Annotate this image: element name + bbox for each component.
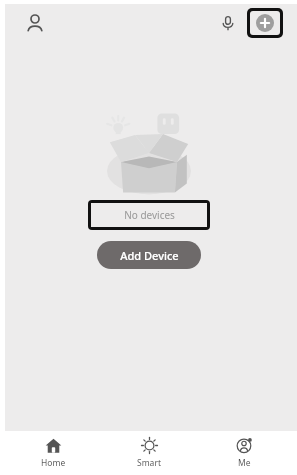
- button[interactable]: Home: [11, 431, 95, 475]
- staticText: Me: [238, 457, 251, 469]
- staticText: Home: [41, 457, 66, 469]
- button[interactable]: Me: [202, 431, 286, 475]
- button[interactable]: Add: [250, 11, 280, 35]
- button[interactable]: Profile: [20, 8, 50, 38]
- button[interactable]: No devices: [91, 203, 207, 227]
- staticText: Smart: [137, 457, 161, 469]
- button[interactable]: Voice: [215, 10, 241, 36]
- staticText: No devices: [124, 208, 175, 222]
- staticText: Add Device: [120, 248, 179, 263]
- button[interactable]: Smart: [107, 431, 191, 475]
- button[interactable]: Add Device: [97, 241, 201, 269]
